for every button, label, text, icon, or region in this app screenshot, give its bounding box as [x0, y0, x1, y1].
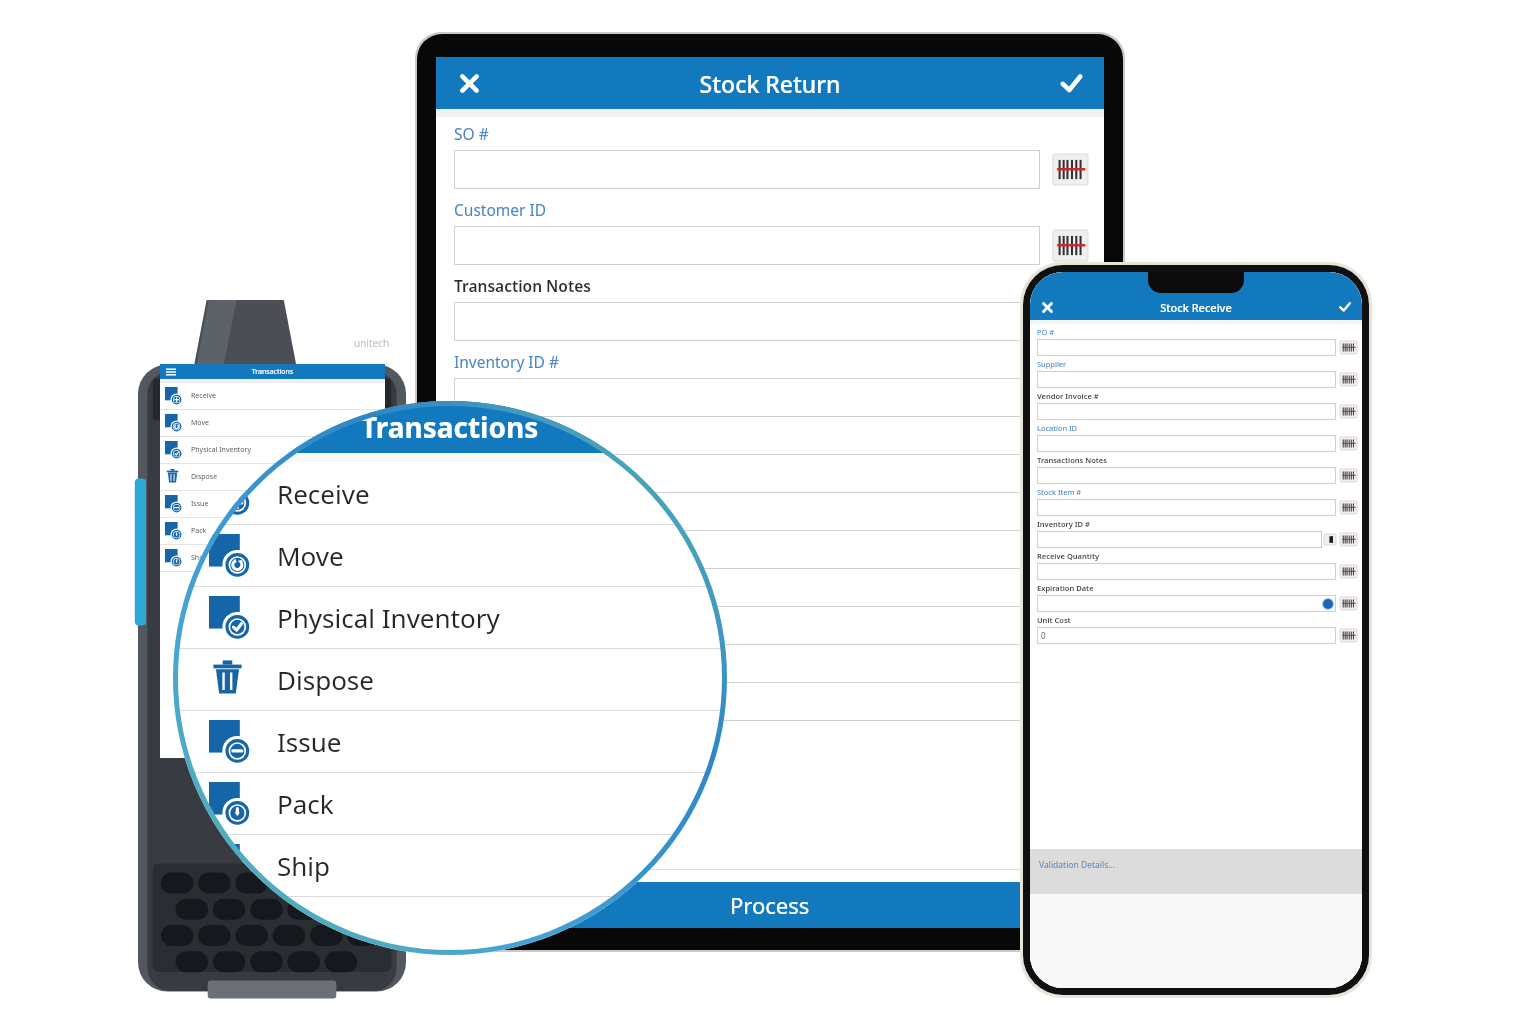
staticText: Expiration Date: [1037, 583, 1094, 593]
button[interactable]: Pack: [160, 518, 385, 544]
staticText: Stock Item #: [454, 427, 546, 448]
button[interactable]: Cancel: [436, 57, 502, 109]
button[interactable]: Scan barcode: [1053, 154, 1088, 185]
button[interactable]: Scan barcode: [1340, 373, 1357, 386]
staticText: Process: [730, 890, 810, 920]
staticText: Transactions: [182, 367, 363, 377]
button[interactable]: Scan barcode: [1340, 469, 1357, 482]
button[interactable]: Confirm: [1038, 57, 1104, 109]
staticText: Transaction Notes: [454, 275, 591, 296]
button[interactable]: [454, 682, 1040, 721]
button[interactable]: Physical Inventory: [160, 437, 385, 463]
button[interactable]: Cancel: [1030, 294, 1064, 320]
button[interactable]: Validation Details…: [1030, 850, 1362, 894]
button[interactable]: [454, 226, 1040, 265]
staticText: Receive: [277, 476, 370, 511]
button[interactable]: [1037, 467, 1336, 484]
staticText: Customer ID: [454, 199, 547, 220]
button[interactable]: [1037, 563, 1336, 580]
button[interactable]: Scan barcode: [1340, 597, 1357, 610]
button[interactable]: Scan barcode: [1053, 610, 1088, 641]
button[interactable]: [1037, 339, 1336, 356]
button[interactable]: [454, 150, 1040, 189]
staticText: Dispose: [191, 472, 218, 482]
button[interactable]: Scan barcode: [1053, 458, 1088, 489]
button[interactable]: Scan barcode: [1053, 382, 1088, 413]
button[interactable]: 0: [1037, 627, 1336, 644]
button[interactable]: Process: [436, 882, 1104, 928]
button[interactable]: [1037, 435, 1336, 452]
button[interactable]: Scan barcode: [1340, 405, 1357, 418]
staticText: Issue: [191, 499, 209, 509]
button[interactable]: Scan barcode: [1053, 534, 1088, 565]
staticText: unitech: [354, 336, 390, 350]
staticText: Location ID: [1037, 423, 1078, 433]
button[interactable]: [454, 530, 1040, 569]
button[interactable]: Pack: [173, 773, 727, 834]
button[interactable]: [1037, 371, 1336, 388]
button[interactable]: Scan barcode: [1053, 306, 1088, 337]
staticText: Move: [191, 418, 209, 428]
button[interactable]: Move: [160, 410, 385, 436]
button[interactable]: Ship: [160, 545, 385, 571]
button[interactable]: Scan barcode: [1340, 437, 1357, 450]
staticText: Transactions: [361, 408, 539, 446]
staticText: Stock Return: [502, 68, 1038, 99]
staticText: Ship: [191, 553, 206, 563]
staticText: Vendor Invoice #: [1037, 391, 1099, 401]
button[interactable]: Lookup: [1324, 534, 1336, 545]
staticText: Pack: [277, 786, 334, 821]
button[interactable]: Issue: [160, 491, 385, 517]
button[interactable]: Menu: [160, 364, 182, 379]
button[interactable]: Scan barcode: [1340, 533, 1357, 546]
button[interactable]: Issue: [173, 711, 727, 772]
button[interactable]: Receive: [160, 383, 385, 409]
staticText: Issue: [277, 724, 342, 759]
button[interactable]: [454, 454, 1040, 493]
button[interactable]: Scan barcode: [1340, 341, 1357, 354]
staticText: Inventory ID #: [454, 351, 559, 372]
button[interactable]: Physical Inventory: [173, 587, 727, 648]
staticText: Pack: [191, 526, 207, 536]
button[interactable]: Dispose: [160, 464, 385, 490]
button[interactable]: [1037, 531, 1322, 548]
staticText: Validation Details…: [1039, 859, 1115, 871]
button[interactable]: [1037, 403, 1336, 420]
button[interactable]: Pick date: [1037, 595, 1336, 612]
button[interactable]: [1037, 499, 1336, 516]
staticText: SO #: [454, 123, 489, 144]
staticText: 0: [1041, 630, 1046, 641]
button[interactable]: [454, 378, 1040, 417]
button[interactable]: Scan barcode: [1340, 501, 1357, 514]
staticText: Ship: [277, 848, 331, 883]
button[interactable]: Pick date: [1321, 597, 1335, 611]
button[interactable]: Move: [173, 525, 727, 586]
staticText: Location ID: [454, 579, 537, 600]
button[interactable]: [454, 606, 1040, 645]
staticText: Receive: [191, 391, 216, 401]
staticText: Transactions Notes: [1037, 455, 1107, 465]
staticText: PO #: [1037, 327, 1055, 337]
staticText: Stock Item #: [1037, 487, 1082, 497]
button[interactable]: Receive: [173, 463, 727, 524]
button[interactable]: [454, 302, 1040, 341]
staticText: Receive Quantity: [1037, 551, 1100, 561]
button[interactable]: Scan barcode: [1340, 565, 1357, 578]
staticText: Supplier: [1037, 359, 1067, 369]
button[interactable]: Confirm: [1328, 294, 1362, 320]
staticText: Physical Inventory: [277, 600, 500, 635]
button[interactable]: Dispose: [173, 649, 727, 710]
staticText: Move: [277, 538, 344, 573]
staticText: Physical Inventory: [191, 445, 251, 455]
button[interactable]: Scan barcode: [1053, 230, 1088, 261]
staticText: Inventory ID #: [1037, 519, 1090, 529]
button[interactable]: Ship: [173, 835, 727, 896]
staticText: Dispose: [277, 662, 374, 697]
staticText: Stock Receive: [1064, 300, 1328, 315]
button[interactable]: Scan barcode: [1340, 629, 1357, 642]
staticText: Unit Cost: [1037, 615, 1071, 625]
